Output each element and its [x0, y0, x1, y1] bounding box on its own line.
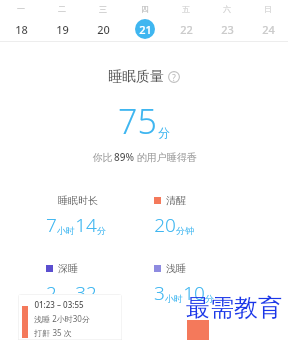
staticText: 三: [99, 4, 107, 14]
staticText: 14: [75, 212, 97, 238]
button[interactable]: 三: [82, 0, 123, 39]
staticText: 四: [141, 4, 149, 14]
staticText: ?: [172, 72, 176, 83]
staticText: 浅睡 2小时30分: [34, 313, 90, 324]
staticText: 分: [97, 293, 106, 304]
button[interactable]: 日: [247, 0, 288, 39]
staticText: 分钟: [176, 225, 194, 236]
button[interactable]: 四: [124, 0, 165, 39]
staticText: 小时: [165, 293, 183, 304]
staticText: 21: [139, 22, 152, 37]
staticText: 最需教育: [186, 293, 282, 323]
staticText: 20: [97, 22, 110, 37]
staticText: 2: [46, 280, 57, 306]
staticText: 日: [264, 4, 272, 14]
staticText: 小时: [57, 225, 75, 236]
staticText: 20: [154, 212, 176, 238]
button[interactable]: 清醒: [154, 194, 194, 238]
staticText: 18: [15, 22, 28, 37]
staticText: 二: [58, 4, 66, 14]
button[interactable]: 睡眠时长: [46, 194, 106, 238]
button[interactable]: 01:23 – 03:55: [18, 294, 122, 340]
staticText: 打鼾 35 次: [34, 327, 72, 338]
staticText: 75: [118, 98, 157, 144]
button[interactable]: 六: [206, 0, 247, 39]
staticText: 你比: [91, 150, 114, 164]
staticText: 01:23 – 03:55: [34, 299, 84, 310]
staticText: 的用户睡得香: [134, 150, 197, 164]
staticText: 小时: [57, 293, 75, 304]
staticText: 23: [221, 22, 234, 37]
staticText: 7: [46, 212, 57, 238]
staticText: 睡眠时长: [58, 194, 98, 207]
button[interactable]: 浅睡: [154, 262, 214, 306]
staticText: 一: [17, 4, 25, 14]
staticText: 分: [158, 125, 170, 140]
staticText: 89%: [114, 150, 134, 164]
staticText: 五: [182, 4, 190, 14]
staticText: 分: [205, 293, 214, 304]
staticText: 19: [56, 22, 69, 37]
button[interactable]: 二: [41, 0, 82, 39]
staticText: 22: [180, 22, 193, 37]
staticText: 3: [154, 280, 165, 306]
button[interactable]: 深睡: [46, 262, 106, 306]
staticText: 10: [183, 280, 205, 306]
button[interactable]: 一: [0, 0, 41, 39]
staticText: 浅睡: [166, 262, 186, 275]
staticText: 六: [223, 4, 231, 14]
staticText: 32: [75, 280, 97, 306]
staticText: 深睡: [58, 262, 78, 275]
button[interactable]: 帮助: [168, 71, 180, 83]
button[interactable]: 五: [165, 0, 206, 39]
staticText: 分: [97, 225, 106, 236]
staticText: 24: [262, 22, 275, 37]
staticText: 清醒: [166, 194, 186, 207]
staticText: 睡眠质量: [108, 68, 164, 86]
